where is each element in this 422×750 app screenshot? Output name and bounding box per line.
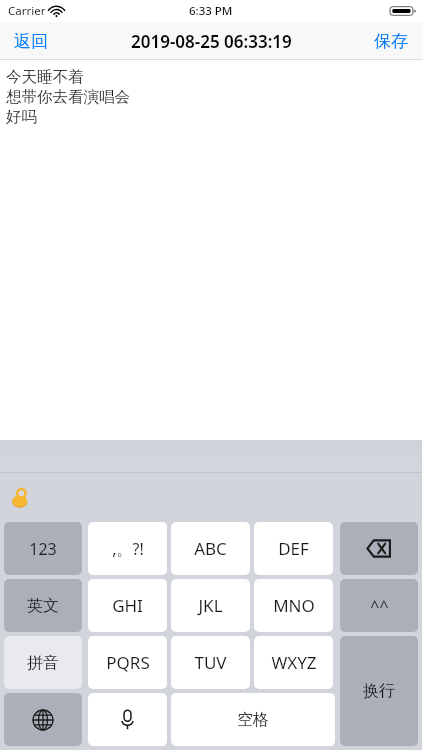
button[interactable]: Switch keyboard [4, 693, 82, 746]
staticText: 空格 [237, 710, 269, 730]
button[interactable]: Delete [340, 522, 418, 575]
staticText: 好吗 [6, 107, 37, 127]
staticText: ,。?! [112, 538, 144, 560]
button[interactable]: WXYZ [254, 636, 333, 689]
staticText: 保存 [374, 31, 408, 52]
button[interactable]: JKL [171, 579, 250, 632]
button[interactable]: 123 [4, 522, 82, 575]
button[interactable]: 保存 [360, 25, 422, 58]
staticText: 123 [29, 538, 57, 560]
button[interactable]: TUV [171, 636, 250, 689]
button[interactable]: 英文 [4, 579, 82, 632]
staticText: 英文 [27, 596, 59, 616]
button[interactable]: DEF [254, 522, 333, 575]
button[interactable]: GHI [88, 579, 167, 632]
staticText: WXYZ [271, 651, 317, 674]
staticText: TUV [194, 651, 227, 674]
staticText: ABC [194, 537, 227, 560]
staticText: ^^ [370, 595, 389, 617]
button[interactable]: ,。?! [88, 522, 167, 575]
staticText: 换行 [363, 681, 395, 701]
button[interactable]: 返回 [0, 25, 62, 58]
staticText: JKL [198, 594, 223, 617]
staticText: 拼音 [27, 653, 59, 673]
staticText: 今天睡不着 [6, 67, 84, 87]
staticText: PQRS [106, 651, 150, 674]
button[interactable]: 换行 [340, 636, 418, 746]
staticText: 6:33 PM [189, 3, 233, 19]
staticText: MNO [273, 594, 315, 617]
button[interactable]: ABC [171, 522, 250, 575]
staticText: 2019-08-25 06:33:19 [131, 30, 292, 53]
button[interactable]: Voice input [88, 693, 167, 746]
button[interactable]: ^^ [340, 579, 418, 632]
button[interactable]: 拼音 [4, 636, 82, 689]
button[interactable]: 空格 [171, 693, 335, 746]
staticText: 返回 [14, 31, 48, 52]
staticText: 想带你去看演唱会 [6, 87, 130, 107]
button[interactable]: PQRS [88, 636, 167, 689]
staticText: Carrier [8, 3, 46, 19]
button[interactable]: MNO [254, 579, 333, 632]
staticText: GHI [112, 594, 143, 617]
button[interactable] [11, 487, 30, 508]
staticText: DEF [278, 537, 309, 560]
